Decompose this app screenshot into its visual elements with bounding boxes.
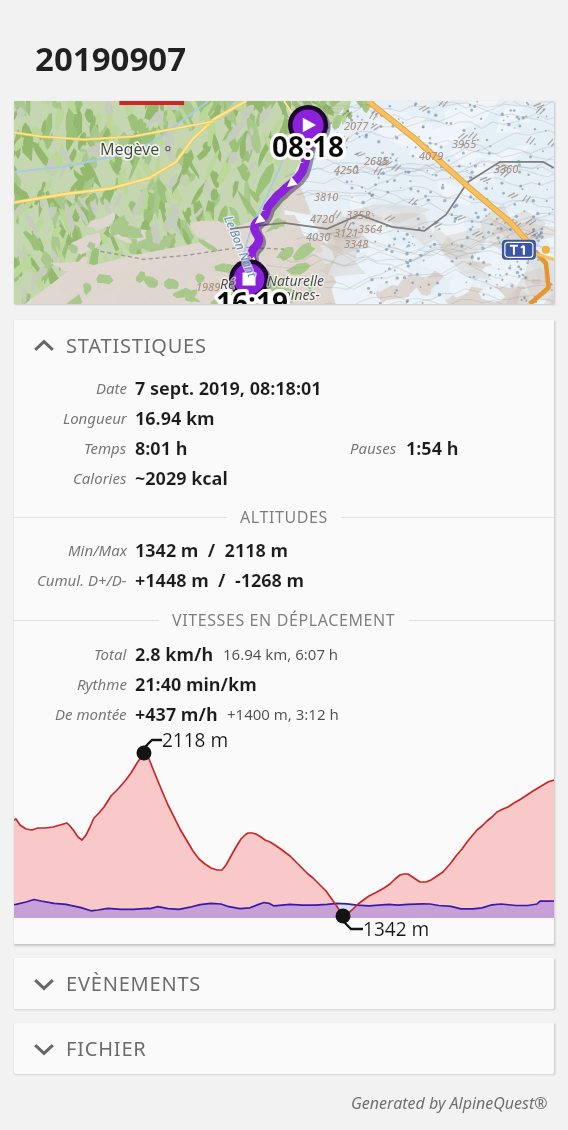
staticText: Longueur bbox=[63, 408, 127, 428]
staticText: EVÈNEMENTS bbox=[66, 970, 202, 997]
staticText: +1400 m, 3:12 h bbox=[227, 704, 339, 724]
staticText: Temps bbox=[84, 438, 127, 458]
staticText: 7 sept. 2019, 08:18:01 bbox=[135, 376, 322, 401]
staticText: Cumul. D+/D- bbox=[37, 570, 127, 590]
button[interactable]: Track map bbox=[14, 101, 554, 304]
staticText: Rythme bbox=[77, 674, 127, 694]
staticText: Total bbox=[94, 644, 127, 664]
staticText: Date bbox=[96, 378, 127, 398]
button[interactable]: Expand section bbox=[14, 958, 554, 1009]
staticText: 20190907 bbox=[35, 36, 187, 81]
staticText: +1448 m / -1268 m bbox=[135, 568, 305, 593]
staticText: Calories bbox=[73, 468, 127, 488]
other: Expand section bbox=[33, 1038, 55, 1060]
staticText: 16.94 km, 6:07 h bbox=[223, 644, 339, 664]
other: Expand section bbox=[33, 973, 55, 995]
staticText: 8:01 h bbox=[135, 436, 188, 461]
staticText: Pauses bbox=[350, 438, 397, 458]
staticText: 1:54 h bbox=[406, 436, 459, 461]
staticText: ALTITUDES bbox=[240, 506, 328, 528]
staticText: 2.8 km/h bbox=[135, 642, 214, 667]
staticText: 21:40 min/km bbox=[135, 672, 257, 697]
staticText: 1342 m / 2118 m bbox=[135, 538, 289, 563]
staticText: STATISTIQUES bbox=[66, 332, 207, 359]
staticText: Generated by AlpineQuest® bbox=[351, 1092, 548, 1114]
staticText: Min/Max bbox=[68, 540, 127, 560]
staticText: ~2029 kcal bbox=[135, 466, 228, 491]
button[interactable]: Collapse section bbox=[14, 320, 554, 371]
staticText: VITESSES EN DÉPLACEMENT bbox=[172, 609, 396, 631]
button[interactable]: Expand section bbox=[14, 1023, 554, 1074]
staticText: FICHIER bbox=[66, 1035, 147, 1062]
staticText: 16.94 km bbox=[135, 406, 215, 431]
staticText: +437 m/h bbox=[135, 702, 218, 727]
staticText: De montée bbox=[55, 704, 127, 724]
other: Collapse section bbox=[33, 335, 55, 357]
